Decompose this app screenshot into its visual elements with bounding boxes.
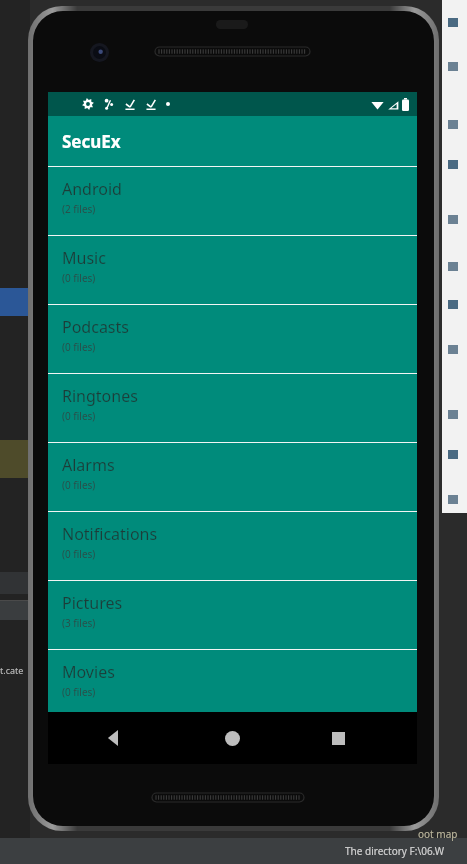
staticText: (2 files) bbox=[62, 202, 96, 216]
staticText: Movies bbox=[62, 661, 115, 683]
staticText: Pictures bbox=[62, 592, 123, 614]
button[interactable]: Back bbox=[96, 720, 132, 756]
staticText: (0 files) bbox=[62, 685, 96, 699]
staticText: Podcasts bbox=[62, 316, 129, 338]
button[interactable]: Ringtones bbox=[48, 374, 417, 442]
staticText: oot map bbox=[418, 827, 458, 841]
staticText: (3 files) bbox=[62, 616, 96, 630]
staticText: t.cate bbox=[0, 664, 24, 676]
button[interactable]: Recent apps bbox=[320, 720, 356, 756]
staticText: The directory F:\06.W bbox=[345, 844, 444, 858]
button[interactable]: Music bbox=[48, 236, 417, 304]
button[interactable]: Movies bbox=[48, 650, 417, 706]
button[interactable]: Android bbox=[48, 167, 417, 235]
staticText: (0 files) bbox=[62, 271, 96, 285]
button[interactable]: Home bbox=[214, 720, 250, 756]
button[interactable]: Podcasts bbox=[48, 305, 417, 373]
staticText: Music bbox=[62, 247, 106, 269]
staticText: (0 files) bbox=[62, 478, 96, 492]
staticText: Android bbox=[62, 178, 122, 200]
staticText: Notifications bbox=[62, 523, 158, 545]
staticText: Ringtones bbox=[62, 385, 138, 407]
staticText: (0 files) bbox=[62, 340, 96, 354]
button[interactable]: Pictures bbox=[48, 581, 417, 649]
button[interactable]: Alarms bbox=[48, 443, 417, 511]
button[interactable]: Notifications bbox=[48, 512, 417, 580]
staticText: SecuEx bbox=[62, 130, 121, 153]
staticText: (0 files) bbox=[62, 409, 96, 423]
staticText: Alarms bbox=[62, 454, 115, 476]
staticText: (0 files) bbox=[62, 547, 96, 561]
